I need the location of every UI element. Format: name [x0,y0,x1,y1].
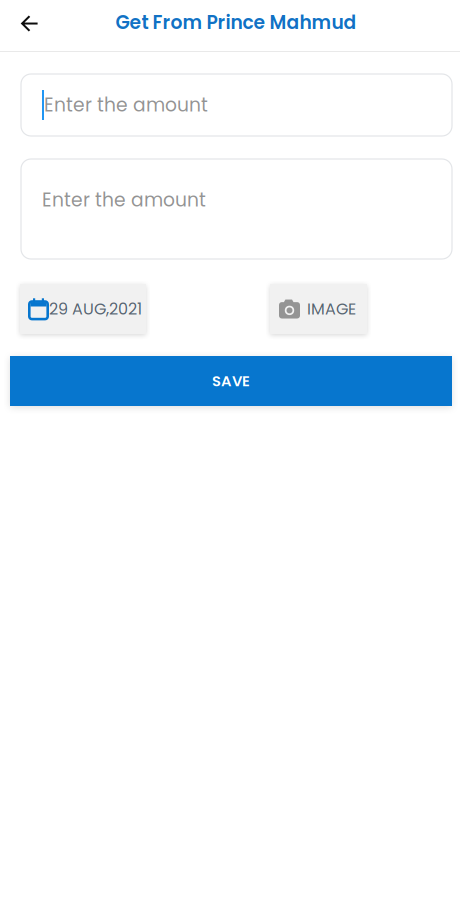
button[interactable]: 29 AUG,2021 [20,284,146,334]
staticText: Enter the amount [44,92,208,118]
button[interactable]: Back [0,0,52,51]
button[interactable]: IMAGE [270,284,367,334]
staticText: Get From Prince Mahmud [115,9,356,35]
staticText: 29 AUG,2021 [49,298,142,320]
staticText: SAVE [212,371,250,391]
staticText: IMAGE [307,298,356,320]
staticText: Enter the amount [42,187,206,213]
button[interactable]: SAVE [10,356,452,406]
